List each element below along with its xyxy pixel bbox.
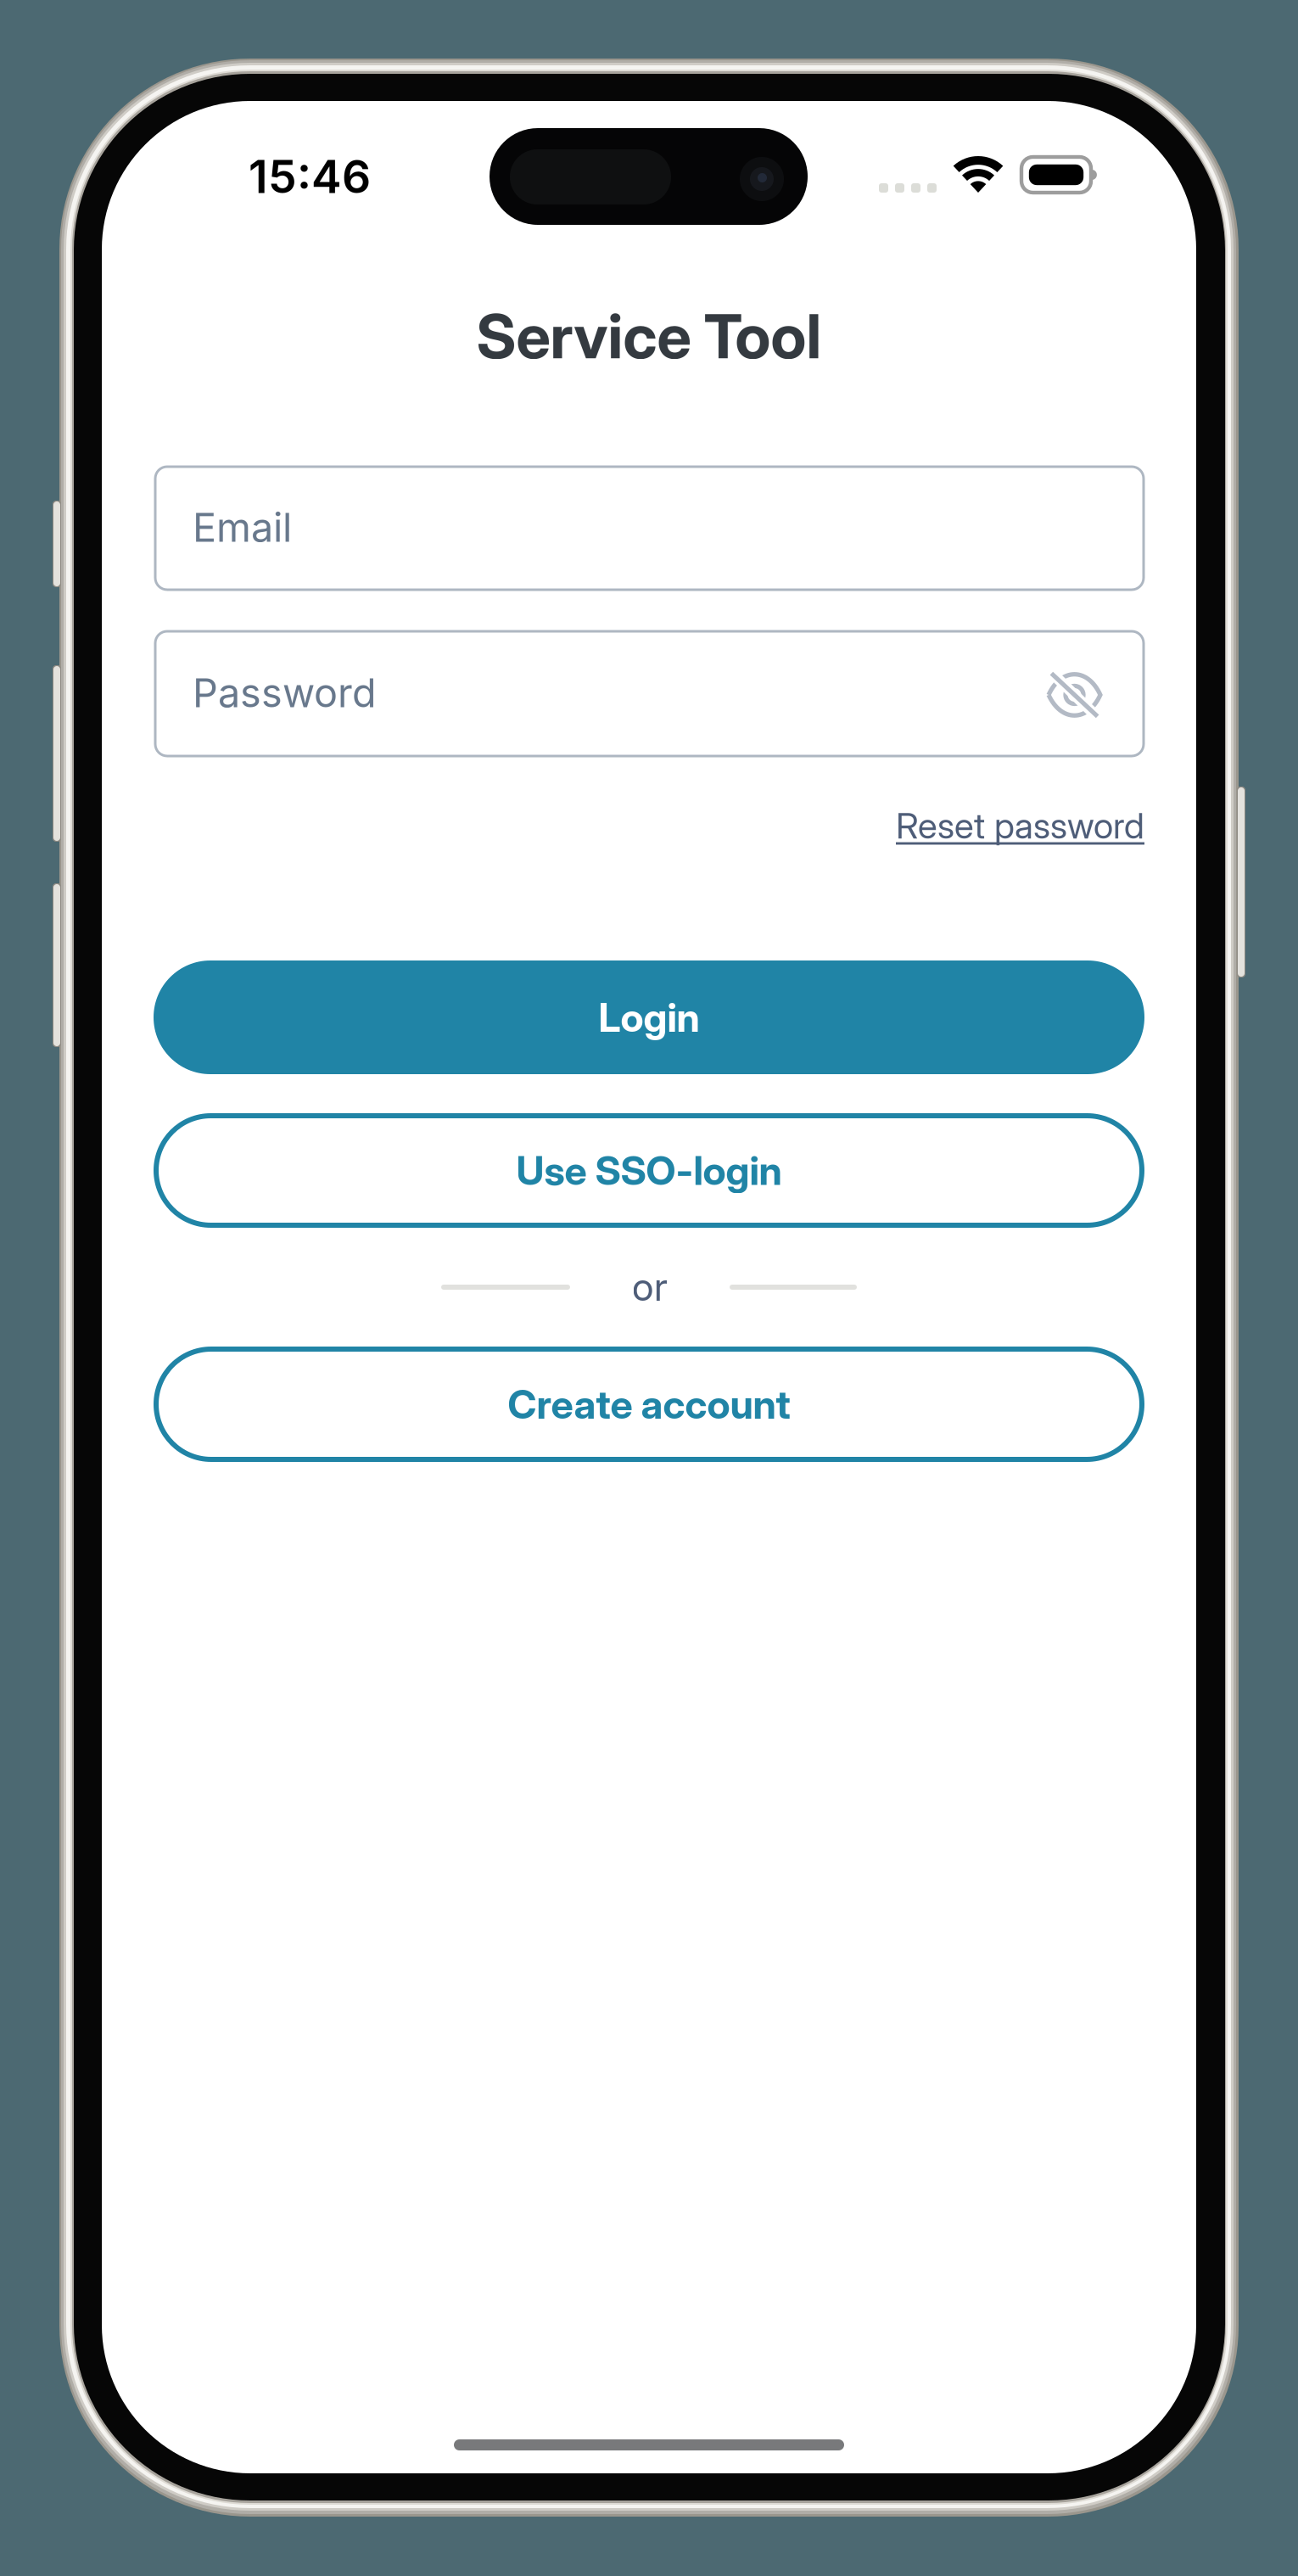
staticText: Login <box>599 993 699 1041</box>
staticText: Email <box>193 503 292 551</box>
button[interactable]: Create account <box>156 1349 1142 1459</box>
staticText: Create account <box>508 1380 790 1428</box>
button[interactable]: Login <box>154 960 1144 1074</box>
button[interactable]: Reset password <box>896 804 1144 847</box>
button[interactable]: Use SSO-login <box>156 1116 1142 1225</box>
button[interactable]: Password <box>155 631 1144 756</box>
button[interactable]: Email <box>155 467 1144 590</box>
staticText: Reset password <box>896 804 1144 847</box>
staticText: or <box>632 1265 668 1310</box>
staticText: Use SSO-login <box>516 1147 782 1194</box>
staticText: Password <box>193 669 377 717</box>
staticText: Service Tool <box>476 299 822 373</box>
staticText: 15:46 <box>249 149 371 204</box>
button[interactable]: Show password <box>1046 672 1103 718</box>
